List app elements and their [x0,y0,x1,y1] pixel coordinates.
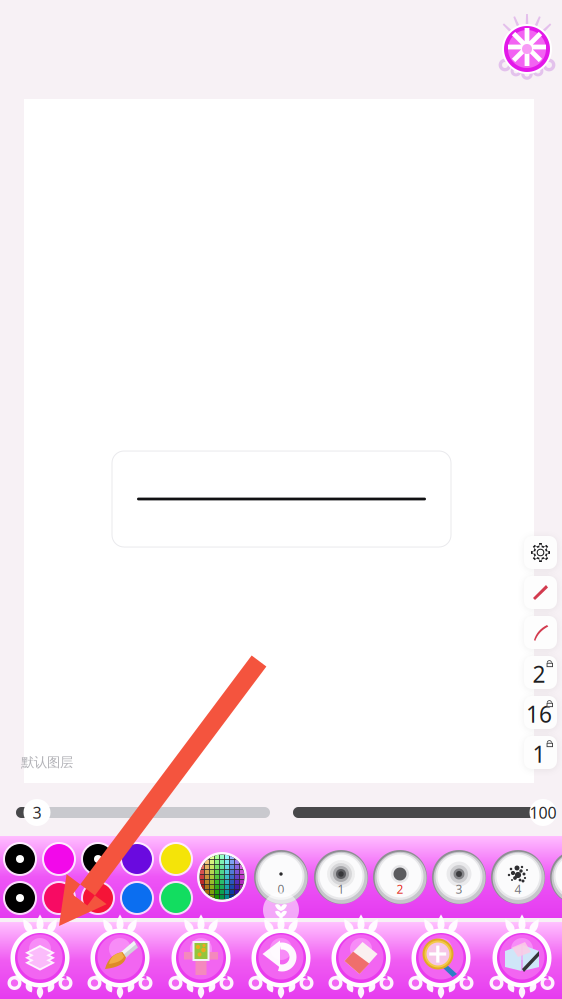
button[interactable]: Red [81,881,115,915]
staticText: 3 [32,802,41,823]
button[interactable]: Brush stroke style 1 [524,576,557,609]
staticText: 2 [532,659,545,689]
button[interactable]: Brush 3 [432,850,486,904]
button[interactable]: Black [3,842,37,876]
button[interactable]: Stamps [161,910,241,999]
button[interactable]: Layer 2 [524,656,557,689]
button[interactable]: Black [81,842,115,876]
button[interactable]: Black [3,881,37,915]
button[interactable]: Undo [241,910,321,999]
button[interactable]: Eraser [321,910,401,999]
button[interactable]: Settings [524,536,557,569]
button[interactable]: Yellow [159,842,193,876]
button[interactable]: Gallery [482,910,562,999]
staticText: 2 [396,881,403,897]
staticText: 1 [337,881,344,897]
button[interactable]: Layers [0,910,80,999]
staticText: 100 [529,802,556,823]
staticText: 16 [526,699,552,729]
button[interactable]: Colour picker [197,852,247,902]
button[interactable]: Brush [80,910,160,999]
button[interactable]: Blue [120,881,154,915]
button[interactable]: Brush 2 [373,850,427,904]
button[interactable]: Brush 1 [314,850,368,904]
button[interactable]: Green [159,881,193,915]
button[interactable]: Brush 5 [550,850,562,904]
button[interactable]: Zoom [401,910,481,999]
button[interactable]: Purple [120,842,154,876]
button[interactable]: Magenta [42,842,76,876]
staticText: 1 [532,739,545,769]
button[interactable]: Layer 16 [524,696,557,729]
button[interactable]: Layer 1 [524,736,557,769]
staticText: 0 [277,881,284,897]
staticText: 默认图层 [21,754,73,770]
button[interactable]: Brush stroke style 2 [524,616,557,649]
staticText: 4 [514,881,521,897]
button[interactable]: Slider 100 [0,798,562,828]
button[interactable]: Slider 3 [0,798,562,828]
button[interactable]: Brush 4 [491,850,545,904]
button[interactable]: App logo [494,12,560,82]
button[interactable]: Pink [42,881,76,915]
staticText: 3 [455,881,462,897]
button[interactable]: Brush 0 [254,850,308,904]
button[interactable]: Show more brushes [263,892,299,928]
